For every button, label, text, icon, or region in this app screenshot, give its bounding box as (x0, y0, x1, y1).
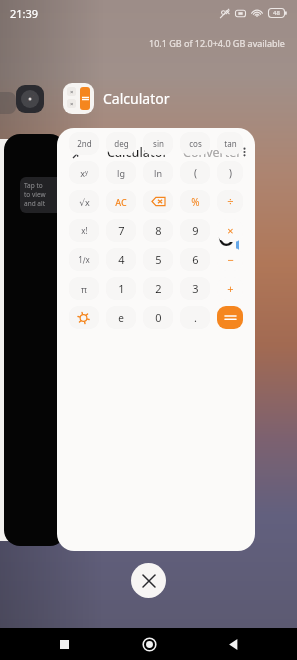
staticText: ÷ (227, 194, 234, 209)
button[interactable]: 8 (143, 219, 173, 242)
staticText: 1∕x (78, 254, 90, 265)
staticText: 2nd (77, 138, 92, 149)
button[interactable]: Home (129, 628, 169, 660)
button[interactable]: Equals (217, 306, 243, 329)
staticText: 2 (155, 281, 162, 296)
button[interactable]: 5 (143, 248, 173, 271)
button[interactable]: % (180, 190, 210, 213)
button[interactable]: ) (217, 161, 243, 184)
button[interactable]: − (217, 248, 243, 271)
button[interactable]: 3 (180, 277, 210, 300)
button[interactable]: Back (213, 628, 253, 660)
staticText: AC (115, 196, 127, 208)
staticText: sin (153, 138, 164, 149)
button[interactable]: √x (69, 190, 99, 213)
button[interactable]: 0 (143, 306, 173, 329)
button[interactable]: 4 (106, 248, 136, 271)
button[interactable]: π (69, 277, 99, 300)
button[interactable]: lg (106, 161, 136, 184)
staticText: xʸ (80, 167, 88, 179)
staticText: ln (154, 167, 162, 179)
button[interactable]: 2 (143, 277, 173, 300)
staticText: cos (189, 138, 202, 149)
staticText: 7 (118, 223, 125, 238)
button[interactable]: ÷ (217, 190, 243, 213)
button[interactable]: + (217, 277, 243, 300)
staticText: 10.1 GB of 12.0+4.0 GB available (149, 37, 285, 49)
staticText: 5 (155, 252, 162, 267)
staticText: and alt (24, 199, 46, 208)
staticText: tan (224, 138, 237, 149)
staticText: − (227, 252, 234, 267)
staticText: Calculator (107, 144, 168, 161)
button[interactable]: 1∕x (69, 248, 99, 271)
staticText: π (81, 283, 87, 295)
staticText: 4 (118, 252, 125, 267)
button[interactable]: Converter (181, 140, 244, 165)
button[interactable]: Backspace (143, 190, 173, 213)
staticText: 0 (217, 211, 236, 256)
button[interactable]: e (106, 306, 136, 329)
button[interactable]: tan (217, 132, 243, 155)
button[interactable]: AC (106, 190, 136, 213)
button[interactable]: Scientific (69, 306, 99, 329)
staticText: Calculator (103, 89, 170, 108)
staticText: ) (229, 166, 232, 180)
staticText: 8 (155, 223, 162, 238)
button[interactable]: xʸ (69, 161, 99, 184)
staticText: 1 (118, 281, 125, 296)
button[interactable]: ( (180, 161, 210, 184)
staticText: to view (24, 190, 46, 199)
staticText: × (70, 100, 74, 108)
button[interactable]: Close all (131, 563, 166, 598)
button[interactable]: 9 (180, 219, 210, 242)
staticText: 48 (273, 9, 280, 17)
button[interactable]: 1 (106, 277, 136, 300)
staticText: √x (79, 196, 90, 208)
staticText: Converter (183, 144, 242, 161)
button[interactable]: × (217, 219, 243, 242)
button[interactable]: deg (106, 132, 136, 155)
button[interactable]: Recents (44, 628, 84, 660)
staticText: × (227, 223, 234, 238)
button[interactable]: 7 (106, 219, 136, 242)
staticText: 3 (192, 281, 199, 296)
button[interactable]: ln (143, 161, 173, 184)
button[interactable]: sin (143, 132, 173, 155)
staticText: + (227, 281, 234, 296)
staticText: ( (194, 166, 197, 180)
button[interactable]: cos (180, 132, 210, 155)
button[interactable]: More options (244, 141, 245, 163)
button[interactable]: Collapse (67, 141, 89, 163)
staticText: 21:39 (10, 6, 39, 21)
button[interactable]: 2nd (69, 132, 99, 155)
staticText: lg (117, 167, 125, 179)
button[interactable]: 6 (180, 248, 210, 271)
staticText: × (70, 88, 74, 96)
button[interactable]: x! (69, 219, 99, 242)
staticText: Tap to (24, 181, 43, 190)
staticText: % (191, 195, 200, 209)
staticText: . (194, 310, 197, 325)
staticText: 9 (192, 223, 199, 238)
staticText: 6 (192, 252, 199, 267)
staticText: e (118, 311, 124, 325)
button[interactable]: Calculator (105, 140, 170, 165)
staticText: 0 (155, 310, 162, 325)
staticText: deg (114, 138, 129, 149)
button[interactable]: . (180, 306, 210, 329)
staticText: x! (81, 225, 88, 236)
